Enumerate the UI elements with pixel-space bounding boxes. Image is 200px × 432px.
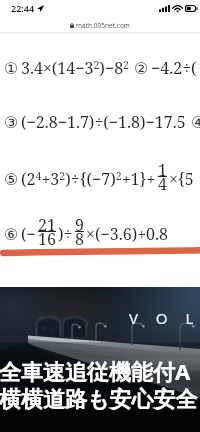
staticText: ③ [4, 113, 19, 132]
staticText: )÷ [58, 223, 73, 245]
button[interactable]: Advertisement [0, 287, 200, 432]
staticText: 全車速追従機能付A [0, 356, 191, 386]
staticText: (24+32)÷{(−7)2+1}+ [21, 168, 156, 190]
staticText: −4.2÷( [151, 57, 197, 79]
staticText: ④ [191, 113, 200, 132]
staticText: ⑥ [4, 225, 19, 244]
staticText: ×{5 [169, 168, 194, 190]
staticText: 8 [75, 228, 84, 249]
staticText: 3.4×(14−32)−82 [21, 57, 129, 79]
staticText: 22:44 [11, 2, 35, 14]
staticText: ×(−3.6)+0.8 [86, 223, 169, 245]
staticText: 21 [38, 214, 56, 236]
staticText: 16 [38, 228, 56, 249]
staticText: (− [21, 223, 36, 245]
staticText: 4 [158, 173, 167, 194]
staticText: 1 [158, 159, 167, 181]
staticText: ② [134, 59, 149, 78]
staticText: VOL [129, 308, 200, 328]
staticText: 9 [75, 214, 84, 236]
staticText: 横横道路も安心安全 [0, 386, 198, 414]
staticText: ① [4, 59, 19, 78]
staticText: math.005net.com [76, 21, 130, 30]
button[interactable]: math.005net.com [70, 21, 130, 30]
staticText: ⑤ [4, 170, 19, 189]
staticText: (−2.8−1.7)÷(−1.8)−17.5 [21, 111, 186, 133]
